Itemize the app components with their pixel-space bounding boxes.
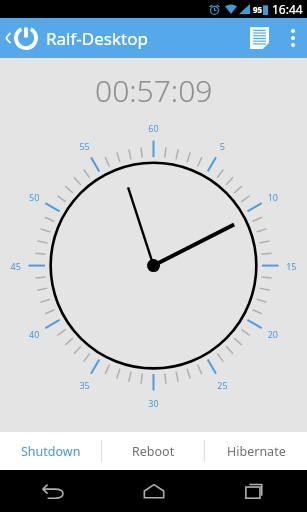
button[interactable]: Back	[0, 470, 103, 512]
button[interactable]: Recent apps	[205, 470, 307, 512]
button[interactable]: Shutdown	[0, 432, 101, 470]
button[interactable]: Reboot	[102, 432, 204, 470]
staticText: 00:57:09	[95, 70, 213, 111]
button[interactable]: Navigate up	[0, 26, 40, 50]
button[interactable]: Home	[103, 470, 205, 512]
staticText: Reboot	[132, 443, 175, 460]
button[interactable]: Hibernate	[205, 432, 307, 470]
button[interactable]: Log	[240, 19, 279, 57]
staticText: 16:44	[272, 1, 303, 17]
staticText: Hibernate	[227, 443, 286, 460]
staticText: 95	[253, 4, 263, 15]
staticText: Ralf-Desktop	[46, 27, 148, 50]
button[interactable]: More options	[279, 21, 307, 55]
staticText: Shutdown	[21, 443, 81, 460]
